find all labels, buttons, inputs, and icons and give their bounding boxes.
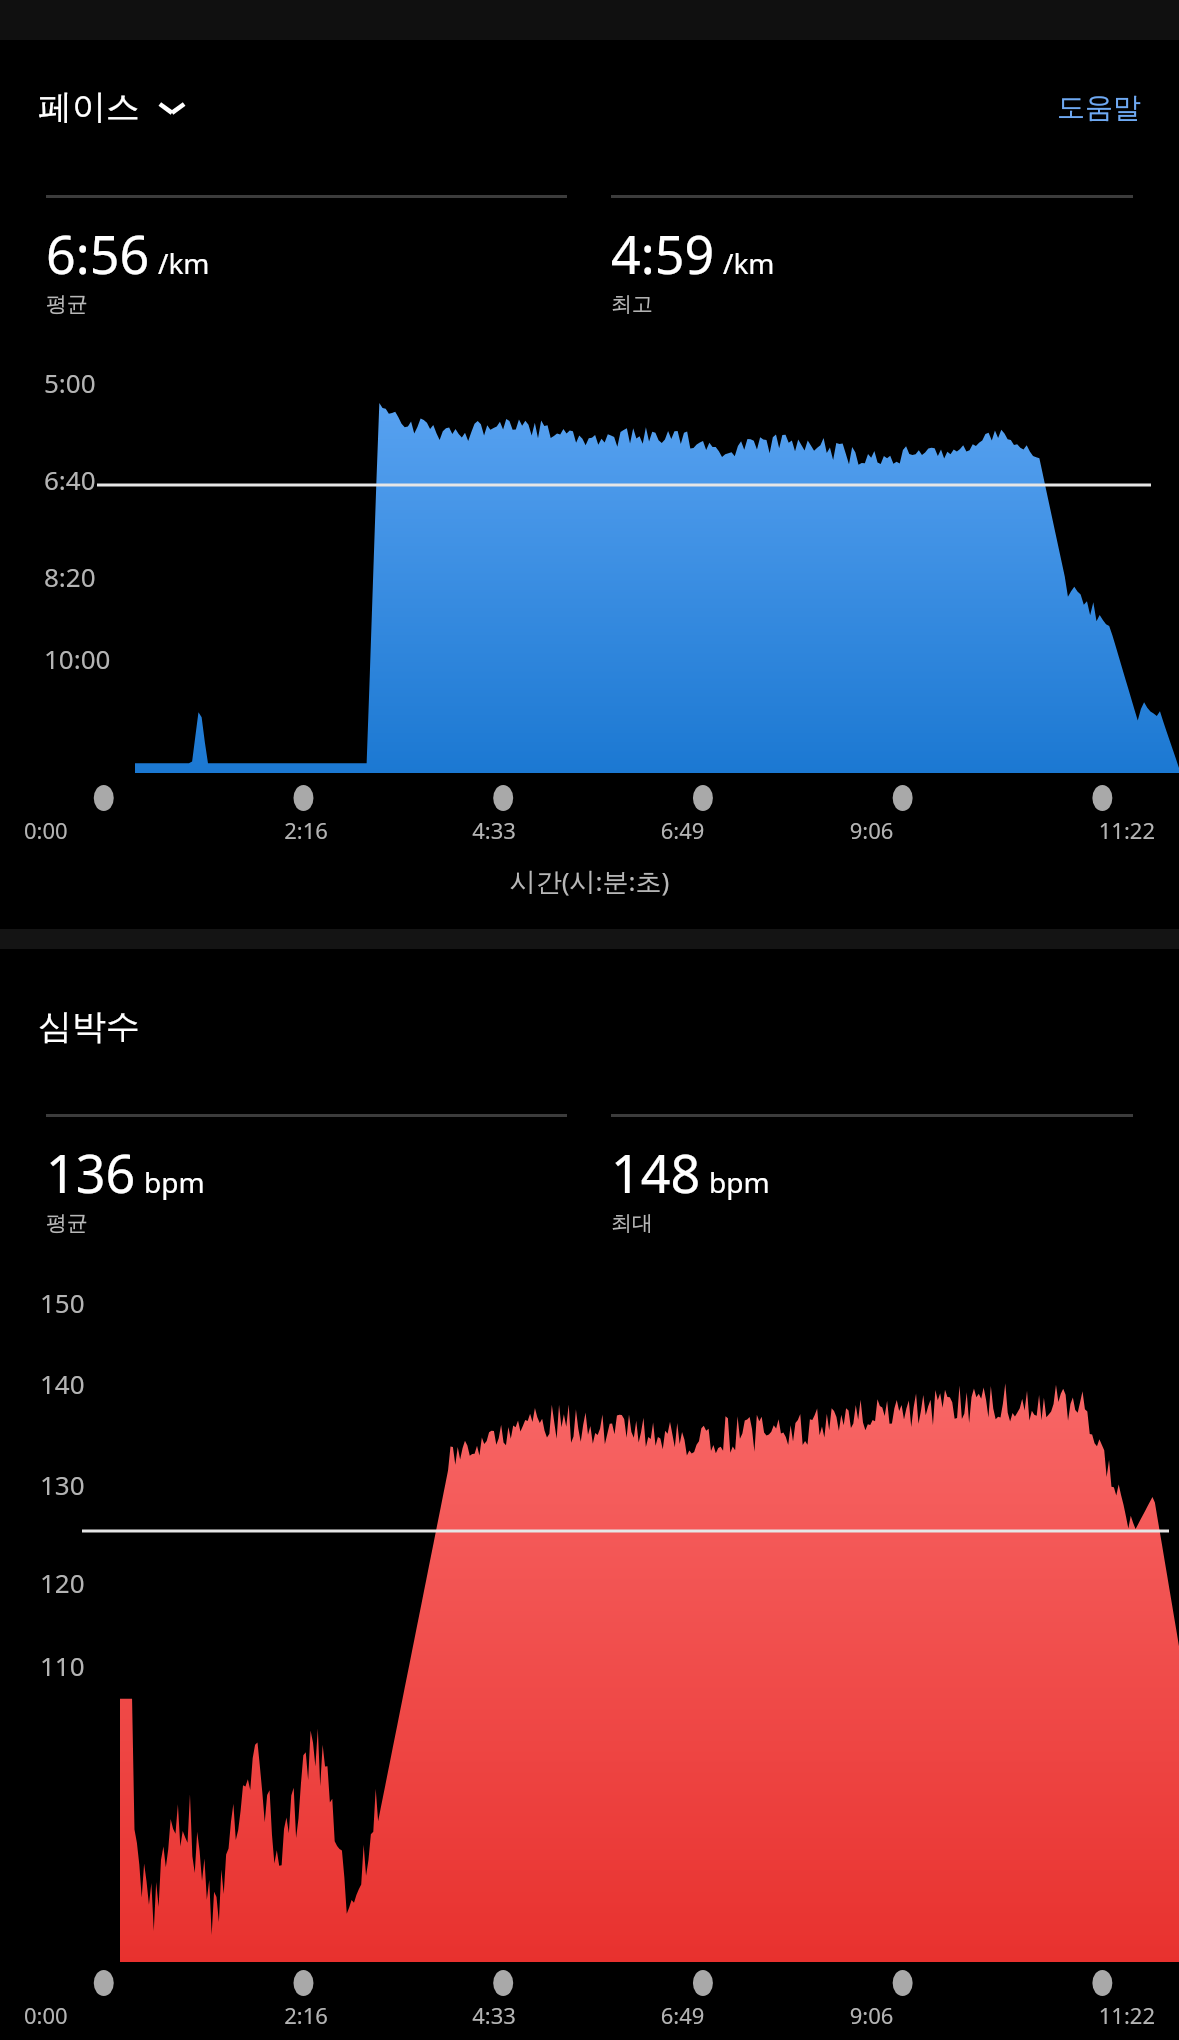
staticText: 136 <box>46 1137 136 1208</box>
button[interactable]: 도움말 <box>1057 90 1141 125</box>
staticText: 최대 <box>611 1210 653 1236</box>
staticText: 110 <box>40 1648 85 1683</box>
staticText: 130 <box>40 1467 85 1502</box>
staticText: 4:59 <box>611 218 715 289</box>
staticText: 도움말 <box>1057 90 1141 125</box>
staticText: 최고 <box>611 291 653 317</box>
staticText: /km <box>723 244 775 282</box>
other: Change metric <box>156 97 188 119</box>
staticText: 2:16 <box>212 815 400 845</box>
staticText: 150 <box>40 1285 85 1320</box>
staticText: 5:00 <box>44 365 96 400</box>
staticText: 페이스 <box>38 86 140 129</box>
staticText: 심박수 <box>38 1005 140 1048</box>
staticText: 6:56 <box>46 218 150 289</box>
staticText: 120 <box>40 1565 85 1600</box>
staticText: 148 <box>611 1137 701 1208</box>
staticText: 11:22 <box>966 815 1155 845</box>
staticText: 9:06 <box>777 815 966 845</box>
staticText: 140 <box>40 1366 85 1401</box>
staticText: 6:40 <box>44 462 96 497</box>
staticText: 0:00 <box>24 2000 212 2030</box>
staticText: 10:00 <box>44 641 111 676</box>
staticText: 0:00 <box>24 815 212 845</box>
staticText: 11:22 <box>966 2000 1155 2030</box>
staticText: 평균 <box>46 291 88 317</box>
staticText: /km <box>158 244 210 282</box>
staticText: 평균 <box>46 1210 88 1236</box>
staticText: 시간(시:분:초) <box>0 863 1179 899</box>
staticText: bpm <box>144 1163 205 1201</box>
staticText: 6:49 <box>588 2000 777 2030</box>
staticText: bpm <box>709 1163 770 1201</box>
staticText: 8:20 <box>44 559 96 594</box>
staticText: 2:16 <box>212 2000 400 2030</box>
button[interactable]: 페이스 <box>38 86 188 129</box>
staticText: 9:06 <box>777 2000 966 2030</box>
staticText: 4:33 <box>400 815 588 845</box>
staticText: 4:33 <box>400 2000 588 2030</box>
staticText: 6:49 <box>588 815 777 845</box>
